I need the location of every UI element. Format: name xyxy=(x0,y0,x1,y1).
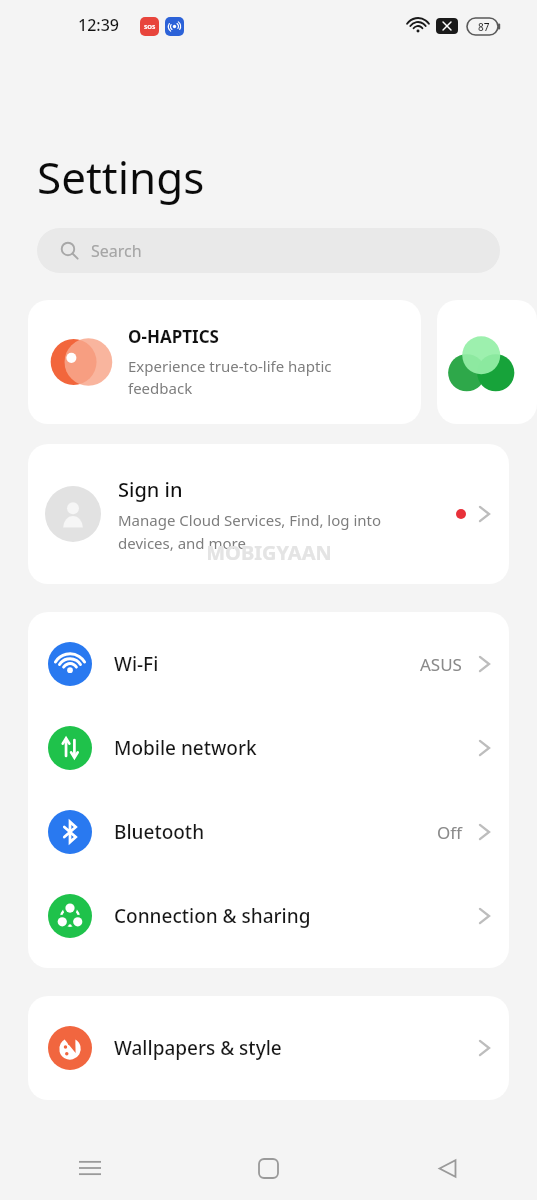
button[interactable]: Back xyxy=(358,1136,537,1200)
staticText: Wallpapers & style xyxy=(114,1035,478,1061)
button[interactable]: Home xyxy=(179,1136,358,1200)
staticText: Sign in xyxy=(118,476,183,503)
staticText: Experience true-to-life haptic feedback xyxy=(128,356,332,399)
staticText: 12:39 xyxy=(78,14,119,36)
staticText: MOBIGYAAN xyxy=(206,539,332,566)
staticText: ASUS xyxy=(420,653,462,676)
staticText: SOS xyxy=(144,23,156,31)
button[interactable]: Recents xyxy=(0,1136,179,1200)
staticText: Wi-Fi xyxy=(114,651,420,677)
staticText: Off xyxy=(437,821,462,844)
button[interactable]: Wallpapers & style xyxy=(28,1006,509,1090)
button[interactable]: Search xyxy=(37,228,500,273)
button[interactable]: Bluetooth xyxy=(28,790,509,874)
button[interactable]: Connection & sharing xyxy=(28,874,509,958)
staticText: Bluetooth xyxy=(114,819,437,845)
staticText: Connection & sharing xyxy=(114,903,478,929)
staticText: Manage Cloud Services, Find, log into de… xyxy=(118,510,382,553)
staticText: Mobile network xyxy=(114,735,478,761)
staticText: O-HAPTICS xyxy=(128,325,219,348)
button[interactable]: Sign in xyxy=(28,444,509,584)
button[interactable]: Wi-Fi xyxy=(28,622,509,706)
staticText: Search xyxy=(91,240,142,262)
button[interactable]: Mobile network xyxy=(28,706,509,790)
button[interactable]: O-HAPTICS xyxy=(28,300,421,424)
staticText: 87 xyxy=(478,20,490,34)
button[interactable]: More features xyxy=(437,300,537,424)
staticText: Settings xyxy=(37,147,205,207)
